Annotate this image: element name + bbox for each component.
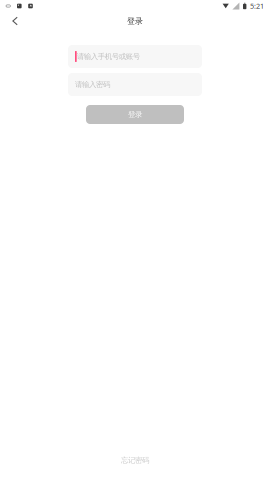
button[interactable]: 登录 [86,105,184,124]
staticText: 忘记密码 [121,456,149,465]
staticText: 登录 [127,16,143,26]
staticText: 5:21 [250,1,264,11]
button[interactable]: Back [0,8,30,34]
staticText: 请输入手机号或账号 [77,52,140,61]
staticText: 登录 [128,110,142,119]
button[interactable]: 忘记密码 [115,450,155,471]
staticText: 请输入密码 [75,80,110,89]
